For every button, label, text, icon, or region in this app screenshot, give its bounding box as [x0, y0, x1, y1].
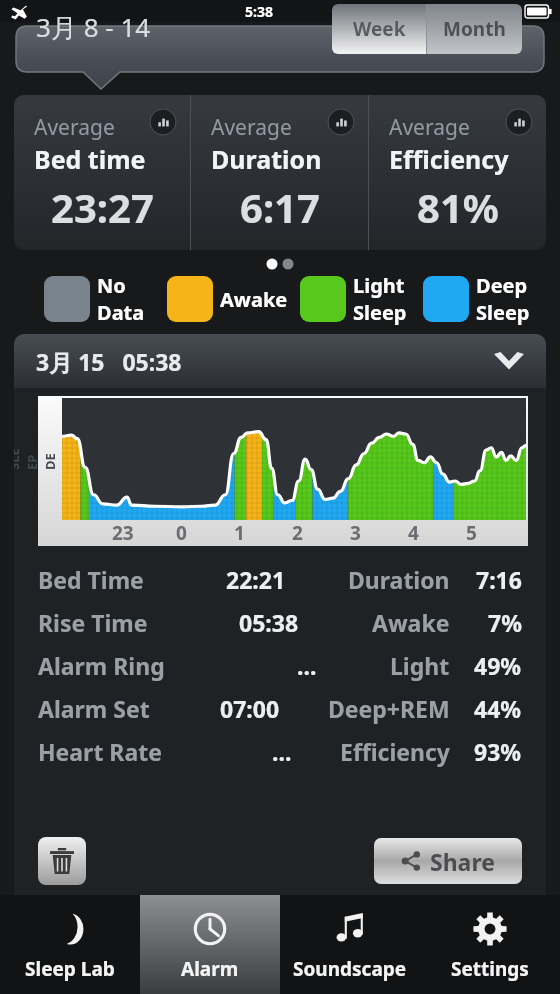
staticText: Soundscape — [293, 956, 407, 982]
staticText: Deep — [476, 272, 528, 299]
staticText: 0 — [176, 520, 187, 546]
staticText: 07:00 — [220, 693, 280, 724]
button[interactable]: Week — [332, 4, 426, 54]
staticText: 4 — [408, 520, 419, 546]
staticText: 7:16 — [476, 564, 522, 595]
staticText: Data — [97, 299, 145, 326]
staticText: 23 — [112, 520, 134, 546]
staticText: 3 — [350, 520, 361, 546]
staticText: Average — [389, 113, 470, 142]
staticText: 81% — [417, 180, 499, 234]
staticText: Light — [353, 272, 405, 299]
button[interactable]: Share — [374, 838, 522, 884]
staticText: 93% — [474, 736, 522, 767]
staticText: Week — [353, 16, 406, 42]
staticText: Heart Rate — [38, 736, 162, 767]
staticText: 05:38 — [239, 607, 299, 638]
button[interactable]: Average — [14, 95, 190, 250]
staticText: Share — [430, 846, 495, 877]
other: Chart — [328, 109, 354, 135]
staticText: 22:21 — [226, 564, 286, 595]
staticText: 2 — [292, 520, 303, 546]
staticText: Sleep — [476, 299, 530, 326]
button[interactable]: Soundscape — [280, 895, 420, 994]
staticText: Month — [443, 16, 506, 42]
button[interactable]: Delete — [38, 837, 86, 885]
staticText: Efficiency — [340, 736, 450, 767]
button[interactable]: Average — [191, 95, 368, 250]
staticText: Alarm Set — [38, 693, 150, 724]
staticText: Sleep Lab — [25, 956, 115, 982]
staticText: Duration — [211, 142, 322, 176]
staticText: 7% — [488, 607, 522, 638]
staticText: Average — [211, 113, 292, 142]
button[interactable]: Settings — [420, 895, 560, 994]
staticText: 99% — [491, 2, 520, 21]
staticText: Awake — [372, 607, 450, 638]
staticText: Settings — [451, 956, 529, 982]
staticText: Rise Time — [38, 607, 148, 638]
staticText: 3月 8 - 14 — [36, 9, 151, 45]
staticText: 3月 15 05:38 — [36, 346, 182, 377]
staticText: 49% — [474, 650, 522, 681]
staticText: SLEEP DEPTH — [14, 446, 95, 470]
staticText: Bed time — [34, 142, 146, 176]
staticText: 6:17 — [240, 180, 320, 234]
staticText: Alarm — [181, 956, 239, 982]
button[interactable]: Month — [427, 4, 522, 54]
staticText: 23:27 — [51, 180, 154, 234]
other: Chart — [506, 109, 532, 135]
button[interactable]: Alarm — [140, 895, 280, 994]
staticText: Efficiency — [389, 142, 509, 176]
staticText: Bed Time — [38, 564, 144, 595]
staticText: 5:38 — [245, 2, 273, 21]
staticText: Alarm Ring — [38, 650, 165, 681]
staticText: No — [97, 272, 126, 299]
staticText: Duration — [348, 564, 450, 595]
staticText: Deep+REM — [328, 693, 450, 724]
button[interactable]: Sleep Lab — [0, 895, 140, 994]
button[interactable]: Average — [369, 95, 546, 250]
staticText: 44% — [474, 693, 522, 724]
staticText: Light — [390, 650, 450, 681]
staticText: 1 — [234, 520, 245, 546]
staticText: 5 — [466, 520, 477, 546]
other: Chart — [150, 109, 176, 135]
staticText: ... — [297, 650, 317, 681]
staticText: Sleep — [353, 299, 407, 326]
staticText: Awake — [220, 286, 288, 313]
button[interactable]: 3月 15 05:38 — [14, 334, 546, 388]
other: Collapse details — [494, 352, 524, 371]
staticText: ... — [272, 736, 292, 767]
staticText: Average — [34, 113, 115, 142]
